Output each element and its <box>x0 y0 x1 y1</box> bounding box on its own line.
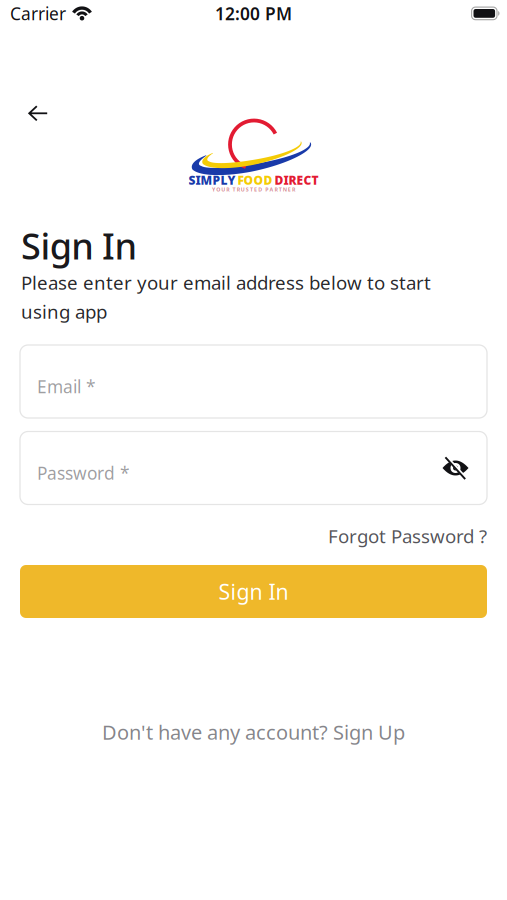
button[interactable]: Don't have any account? Sign Up <box>102 719 405 745</box>
button[interactable]: Show password <box>442 458 469 477</box>
staticText: Sign In <box>218 577 288 606</box>
staticText: Email * <box>37 375 96 398</box>
staticText: DIRECT <box>274 172 318 188</box>
button[interactable]: Sign In <box>20 565 487 618</box>
button[interactable]: Forgot Password ? <box>328 524 487 548</box>
staticText: Please enter your email address below to… <box>21 270 431 324</box>
staticText: Password * <box>37 461 130 484</box>
button[interactable]: Password <box>20 431 487 504</box>
staticText: Sign In <box>21 222 137 269</box>
staticText: Don't have any account? Sign Up <box>102 719 405 745</box>
staticText: FOOD <box>237 172 272 188</box>
staticText: SIMPLY <box>188 172 235 188</box>
staticText: 12:00 PM <box>215 2 292 25</box>
button[interactable]: Back <box>19 97 57 129</box>
staticText: Forgot Password ? <box>328 524 487 548</box>
staticText: Carrier <box>10 2 66 25</box>
staticText: YOUR TRUSTED PARTNER <box>212 186 295 193</box>
button[interactable]: Email <box>20 345 487 418</box>
